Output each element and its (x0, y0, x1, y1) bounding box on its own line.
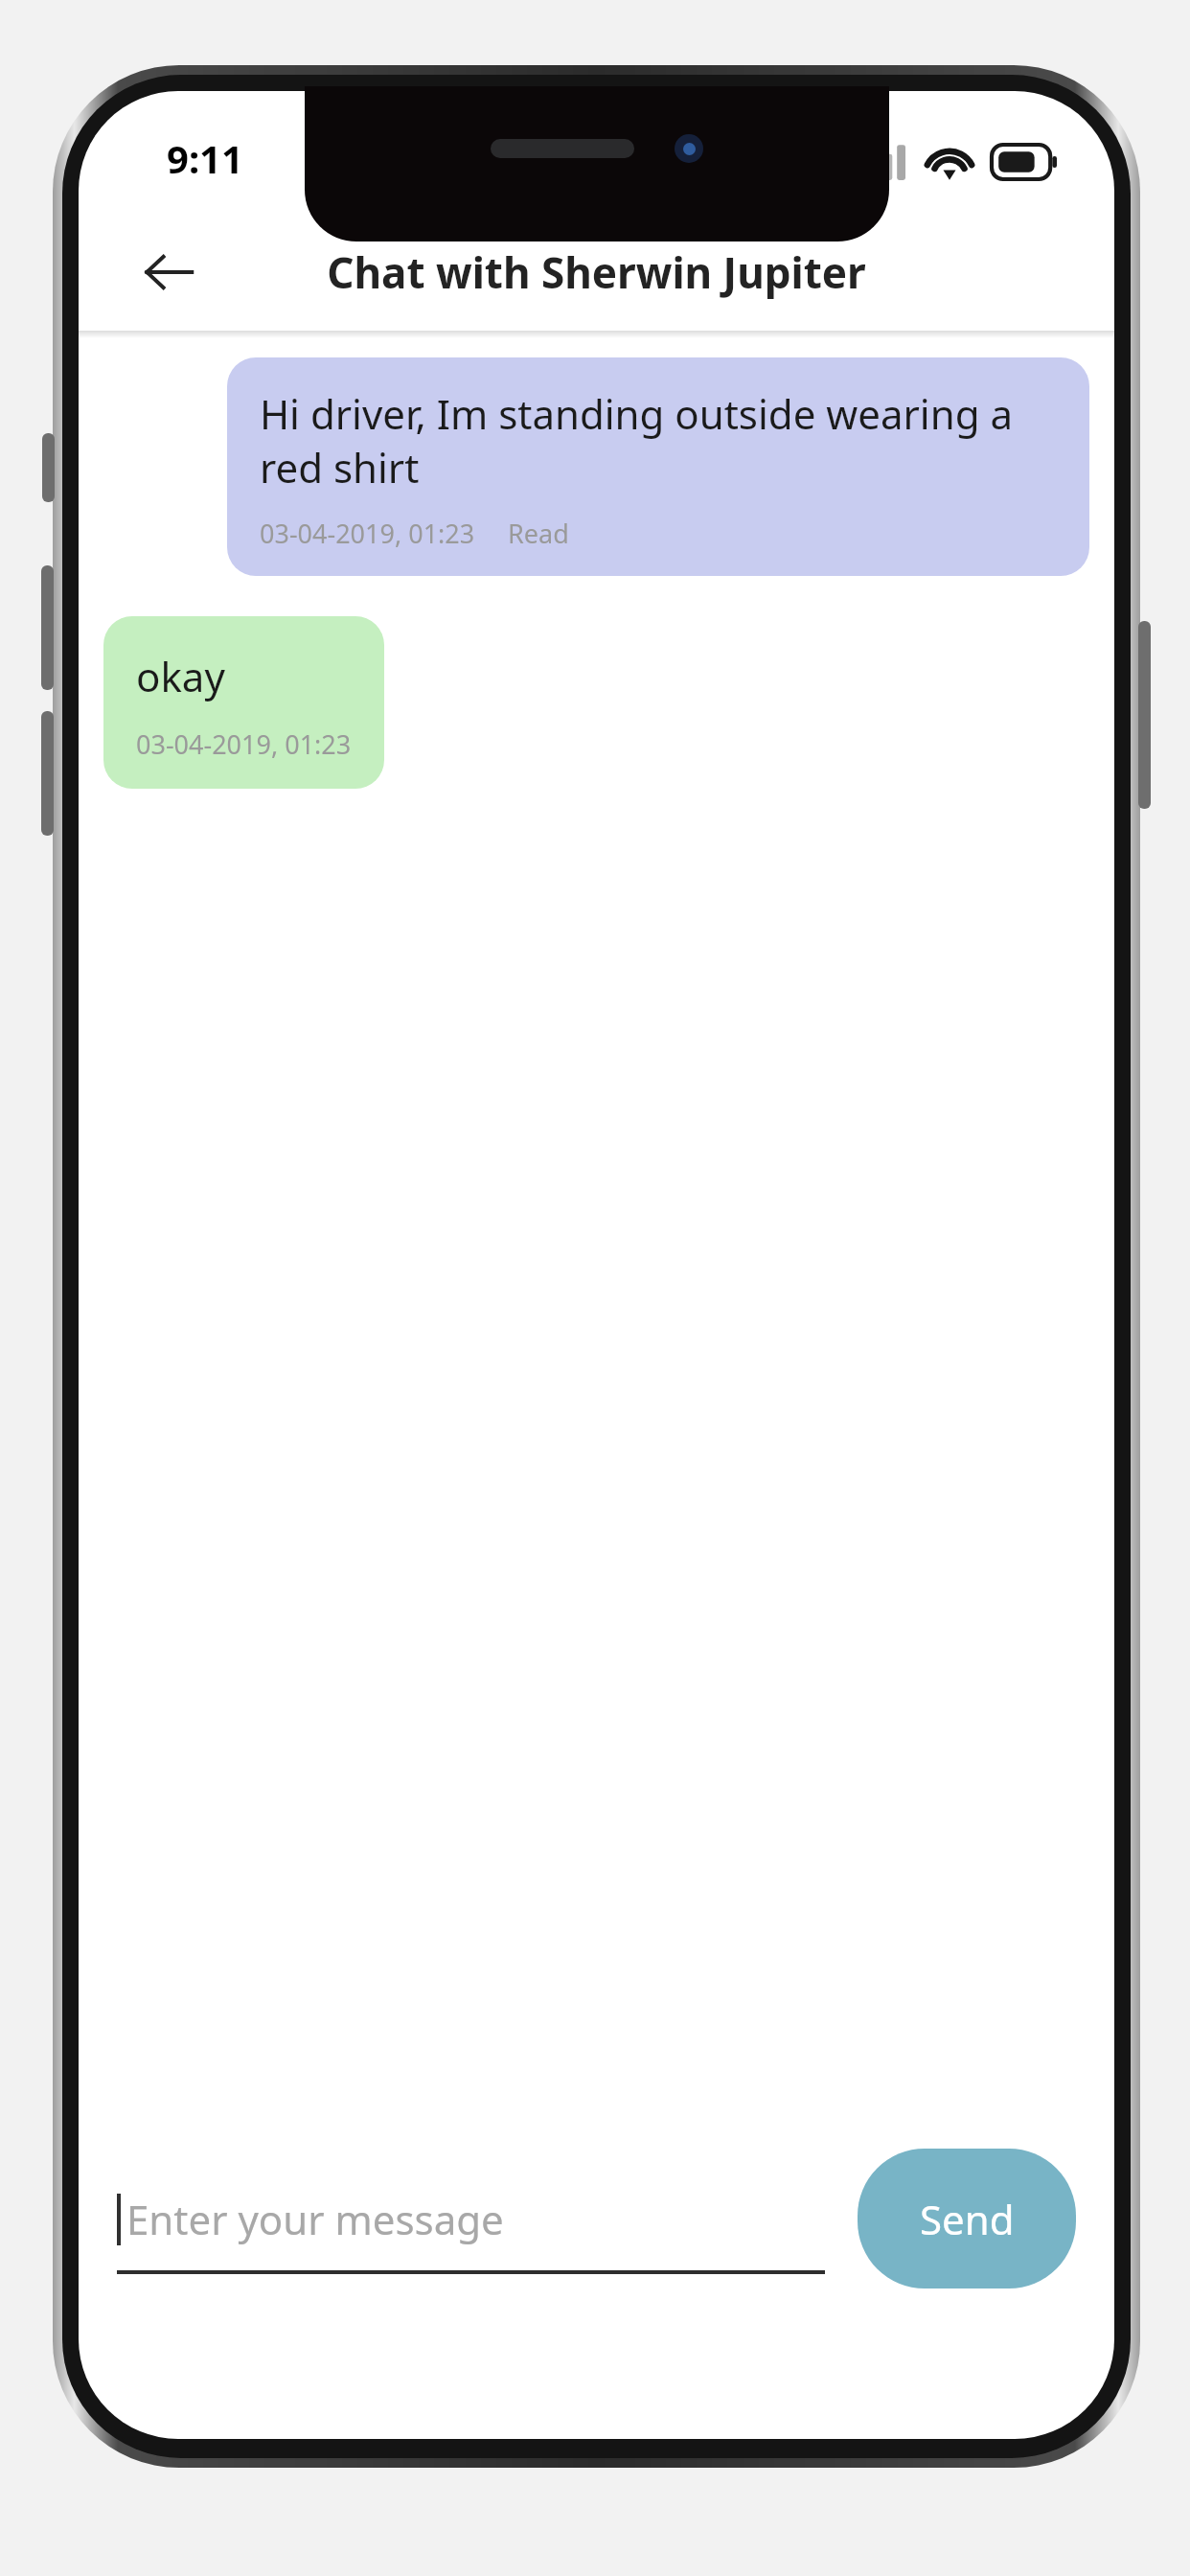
staticText: Read (508, 516, 569, 551)
staticText: okay (136, 649, 225, 703)
staticText: Send (920, 2192, 1015, 2246)
staticText: Hi driver, Im standing outside wearing a… (260, 386, 1057, 494)
button[interactable]: Back (125, 228, 213, 316)
staticText: 03-04-2019, 01:23 (260, 516, 475, 551)
staticText: Chat with Sherwin Jupiter (327, 243, 866, 301)
staticText: 03-04-2019, 01:23 (136, 726, 352, 762)
button[interactable]: Hi driver, Im standing outside wearing a… (227, 357, 1089, 576)
button[interactable]: Send (858, 2149, 1076, 2288)
button[interactable]: Enter your message (117, 2163, 825, 2274)
button[interactable]: okay (103, 616, 384, 789)
staticText: 9:11 (167, 132, 243, 184)
staticText: Enter your message (126, 2192, 504, 2246)
